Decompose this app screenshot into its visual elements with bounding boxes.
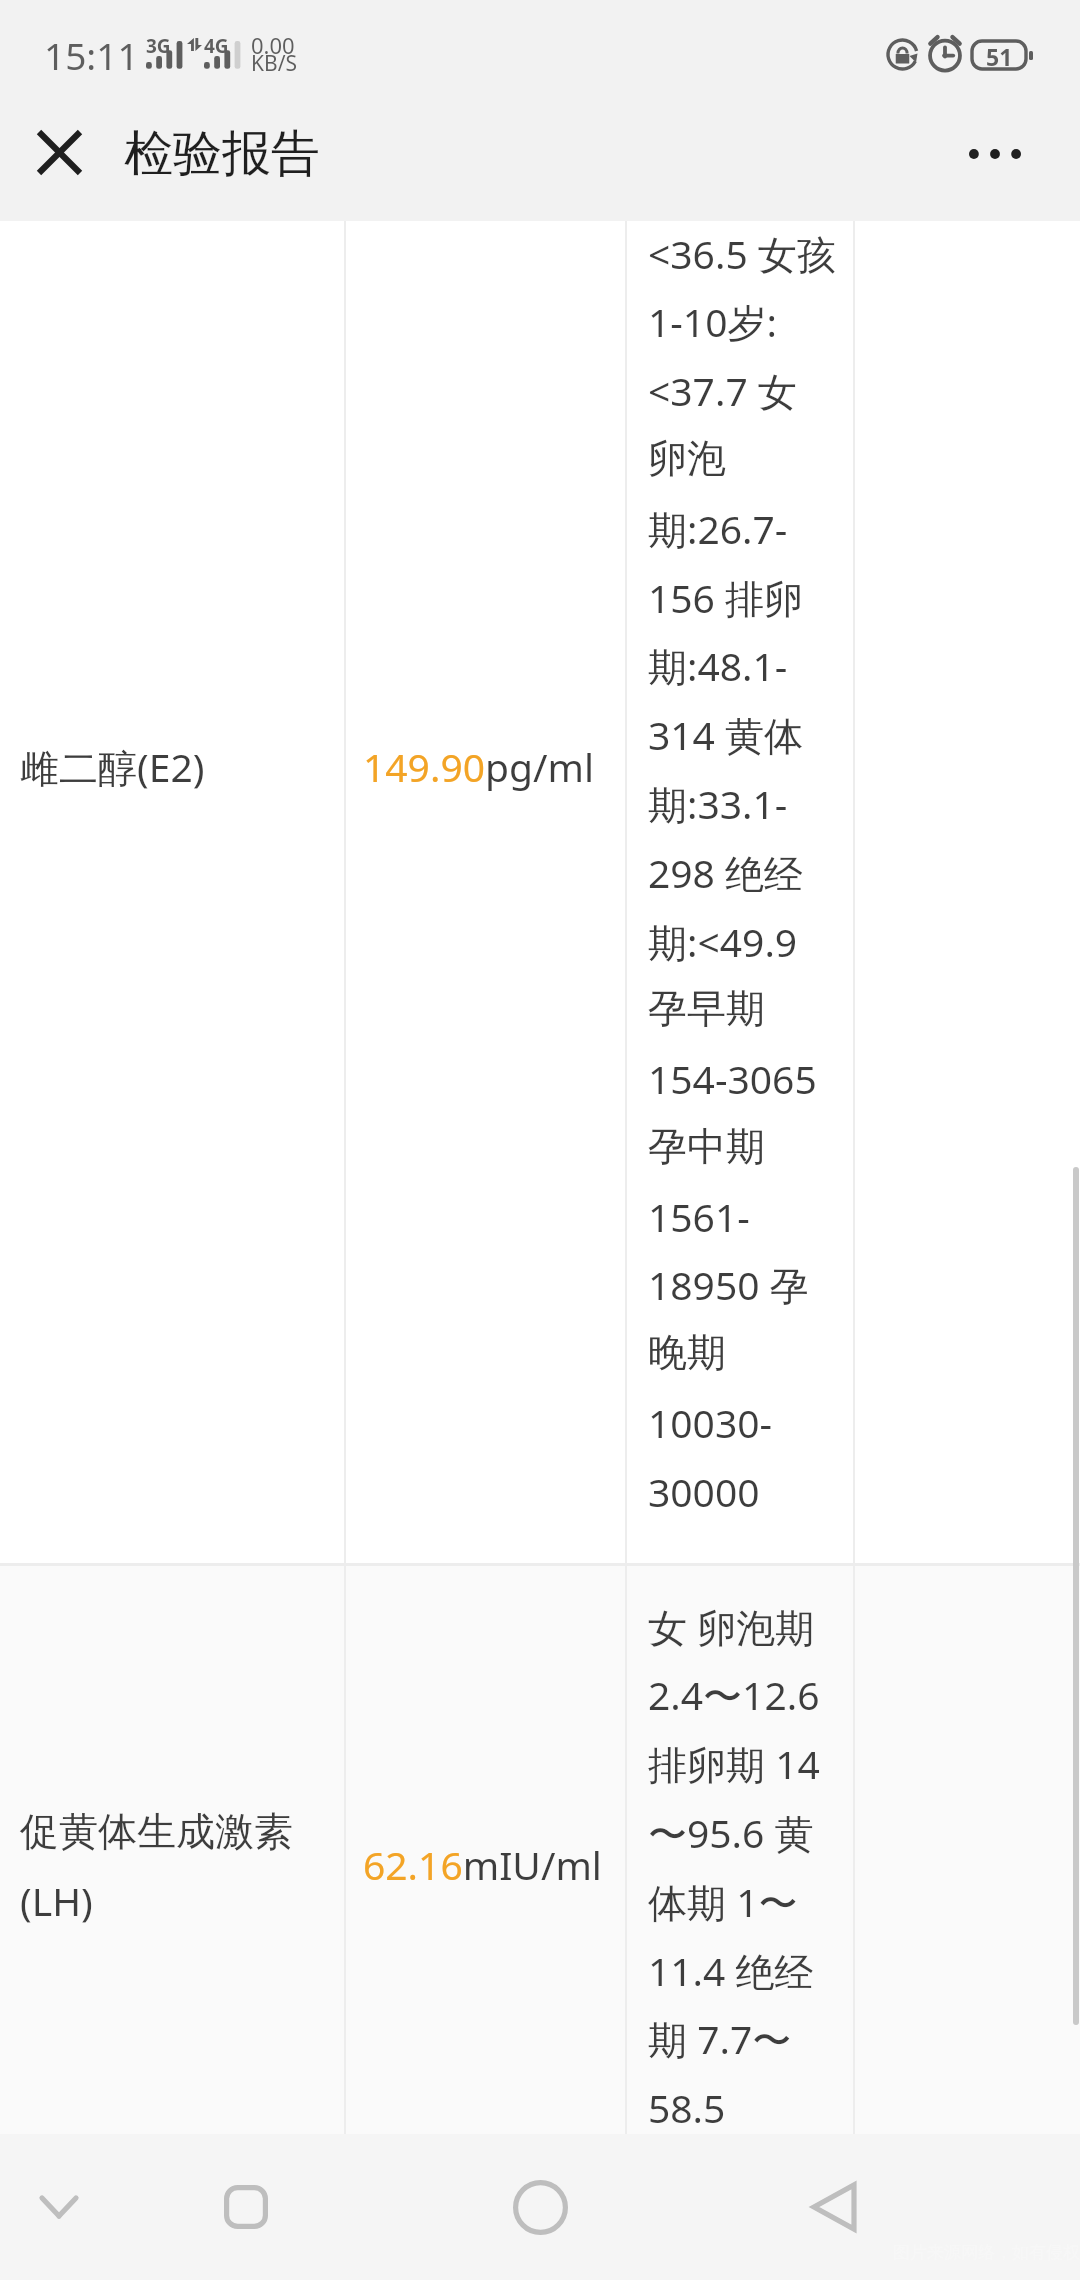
staticText: 体期 1〜 xyxy=(648,1864,798,1934)
staticText: 雌二醇(E2) xyxy=(20,729,205,799)
staticText: 期:26.7- xyxy=(648,491,788,561)
staticText: 10030- xyxy=(648,1385,773,1452)
button[interactable]: 雌二醇(E2) xyxy=(0,221,1080,1563)
staticText: (LH) xyxy=(20,1863,93,1930)
staticText: 检验报告 xyxy=(124,133,320,183)
staticText: 女 卵泡期 xyxy=(648,1589,815,1659)
staticText: 18950 孕 xyxy=(648,1247,809,1317)
staticText: 51 xyxy=(986,41,1013,69)
button[interactable]: More options xyxy=(938,97,1051,210)
button[interactable]: Back xyxy=(764,2137,904,2277)
staticText: <37.7 女 xyxy=(648,353,797,423)
staticText: 排卵期 14 xyxy=(648,1726,820,1796)
staticText: 154-3065 xyxy=(648,1041,817,1108)
staticText: 314 黄体 xyxy=(648,697,804,767)
staticText: 期:<49.9 xyxy=(648,904,798,974)
staticText: 孕中期 xyxy=(648,1110,765,1177)
staticText: 促黄体生成激素 xyxy=(20,1795,293,1862)
button[interactable]: 促黄体生成激素 xyxy=(0,1566,1080,2134)
staticText: 149.90pg/ml xyxy=(363,729,594,796)
staticText: 4G xyxy=(204,33,229,59)
staticText: 3G xyxy=(146,33,171,59)
staticText: <36.5 女孩 xyxy=(648,221,836,286)
staticText: 1561- xyxy=(648,1179,750,1246)
staticText: 58.5 xyxy=(648,2070,726,2134)
staticText: 1-10岁: xyxy=(648,284,777,354)
staticText: 2.4〜12.6 xyxy=(648,1657,820,1727)
button[interactable]: Close xyxy=(0,96,119,209)
staticText: 期:48.1- xyxy=(648,628,788,698)
staticText: 298 绝经 xyxy=(648,835,804,905)
staticText: 期:33.1- xyxy=(648,766,788,836)
staticText: KB/S xyxy=(251,53,297,76)
staticText: 156 排卵 xyxy=(648,560,804,630)
staticText: 62.16mIU/ml xyxy=(363,1827,602,1894)
staticText: 期 7.7〜 xyxy=(648,2001,792,2071)
button[interactable]: Hide keyboard xyxy=(0,2137,129,2277)
staticText: 15:11 xyxy=(44,40,139,78)
button[interactable]: Home xyxy=(470,2137,610,2277)
staticText: 孕早期 xyxy=(648,972,765,1039)
staticText: 晚期 xyxy=(648,1316,726,1383)
staticText: 〜95.6 黄 xyxy=(648,1795,814,1865)
staticText: 0.00 xyxy=(251,36,295,59)
staticText: 30000 xyxy=(648,1454,760,1521)
staticText: 卵泡 xyxy=(648,422,726,489)
button[interactable]: Recent apps xyxy=(176,2137,316,2277)
staticText: 11.4 绝经 xyxy=(648,1933,814,2003)
